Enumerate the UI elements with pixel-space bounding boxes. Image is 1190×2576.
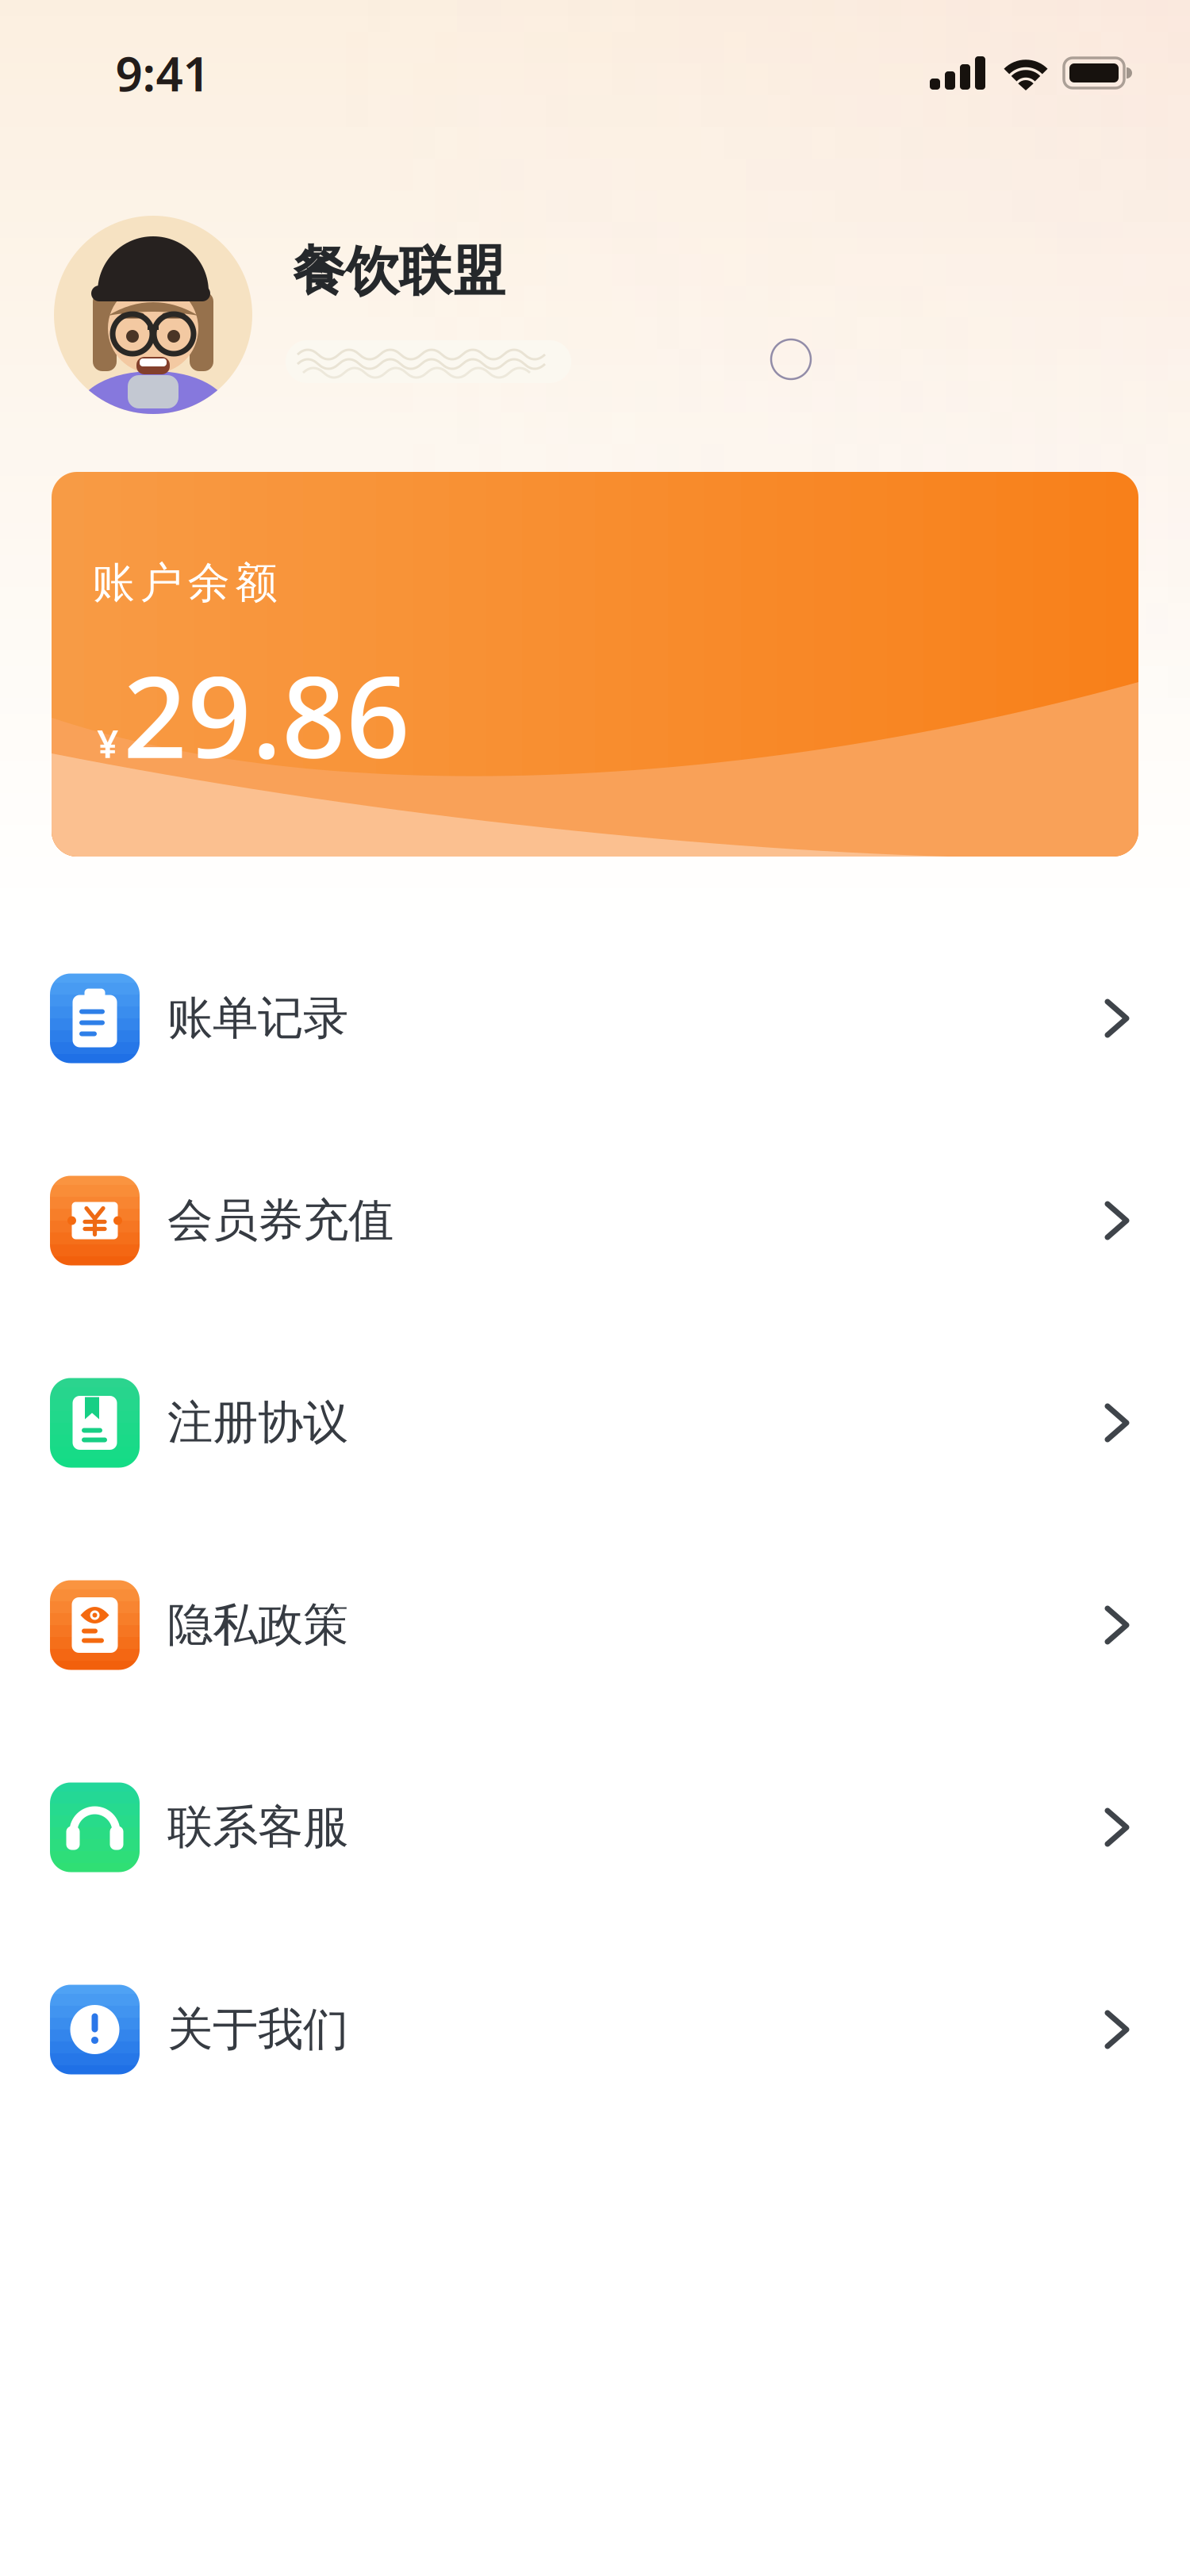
button[interactable]: 联系客服 <box>0 1736 1190 1919</box>
button[interactable]: 会员券充值 <box>0 1129 1190 1312</box>
staticText: ¥ <box>97 718 118 769</box>
staticText: 隐私政策 <box>167 1597 348 1653</box>
button[interactable]: 注册协议 <box>0 1332 1190 1514</box>
staticText: 关于我们 <box>167 2002 348 2057</box>
staticText: 会员券充值 <box>167 1193 393 1249</box>
button[interactable]: 账单记录 <box>0 927 1190 1110</box>
staticText: 餐饮联盟 <box>293 239 505 304</box>
staticText: 账户余额 <box>92 557 277 609</box>
button[interactable]: 隐私政策 <box>0 1534 1190 1716</box>
staticText: 注册协议 <box>167 1395 348 1451</box>
staticText: 9:41 <box>115 41 210 105</box>
button[interactable]: Select <box>771 339 811 379</box>
staticText: 联系客服 <box>167 1799 348 1855</box>
staticText: 29.86 <box>123 640 410 789</box>
staticText: 账单记录 <box>167 990 348 1046</box>
button[interactable]: 关于我们 <box>0 1938 1190 2121</box>
